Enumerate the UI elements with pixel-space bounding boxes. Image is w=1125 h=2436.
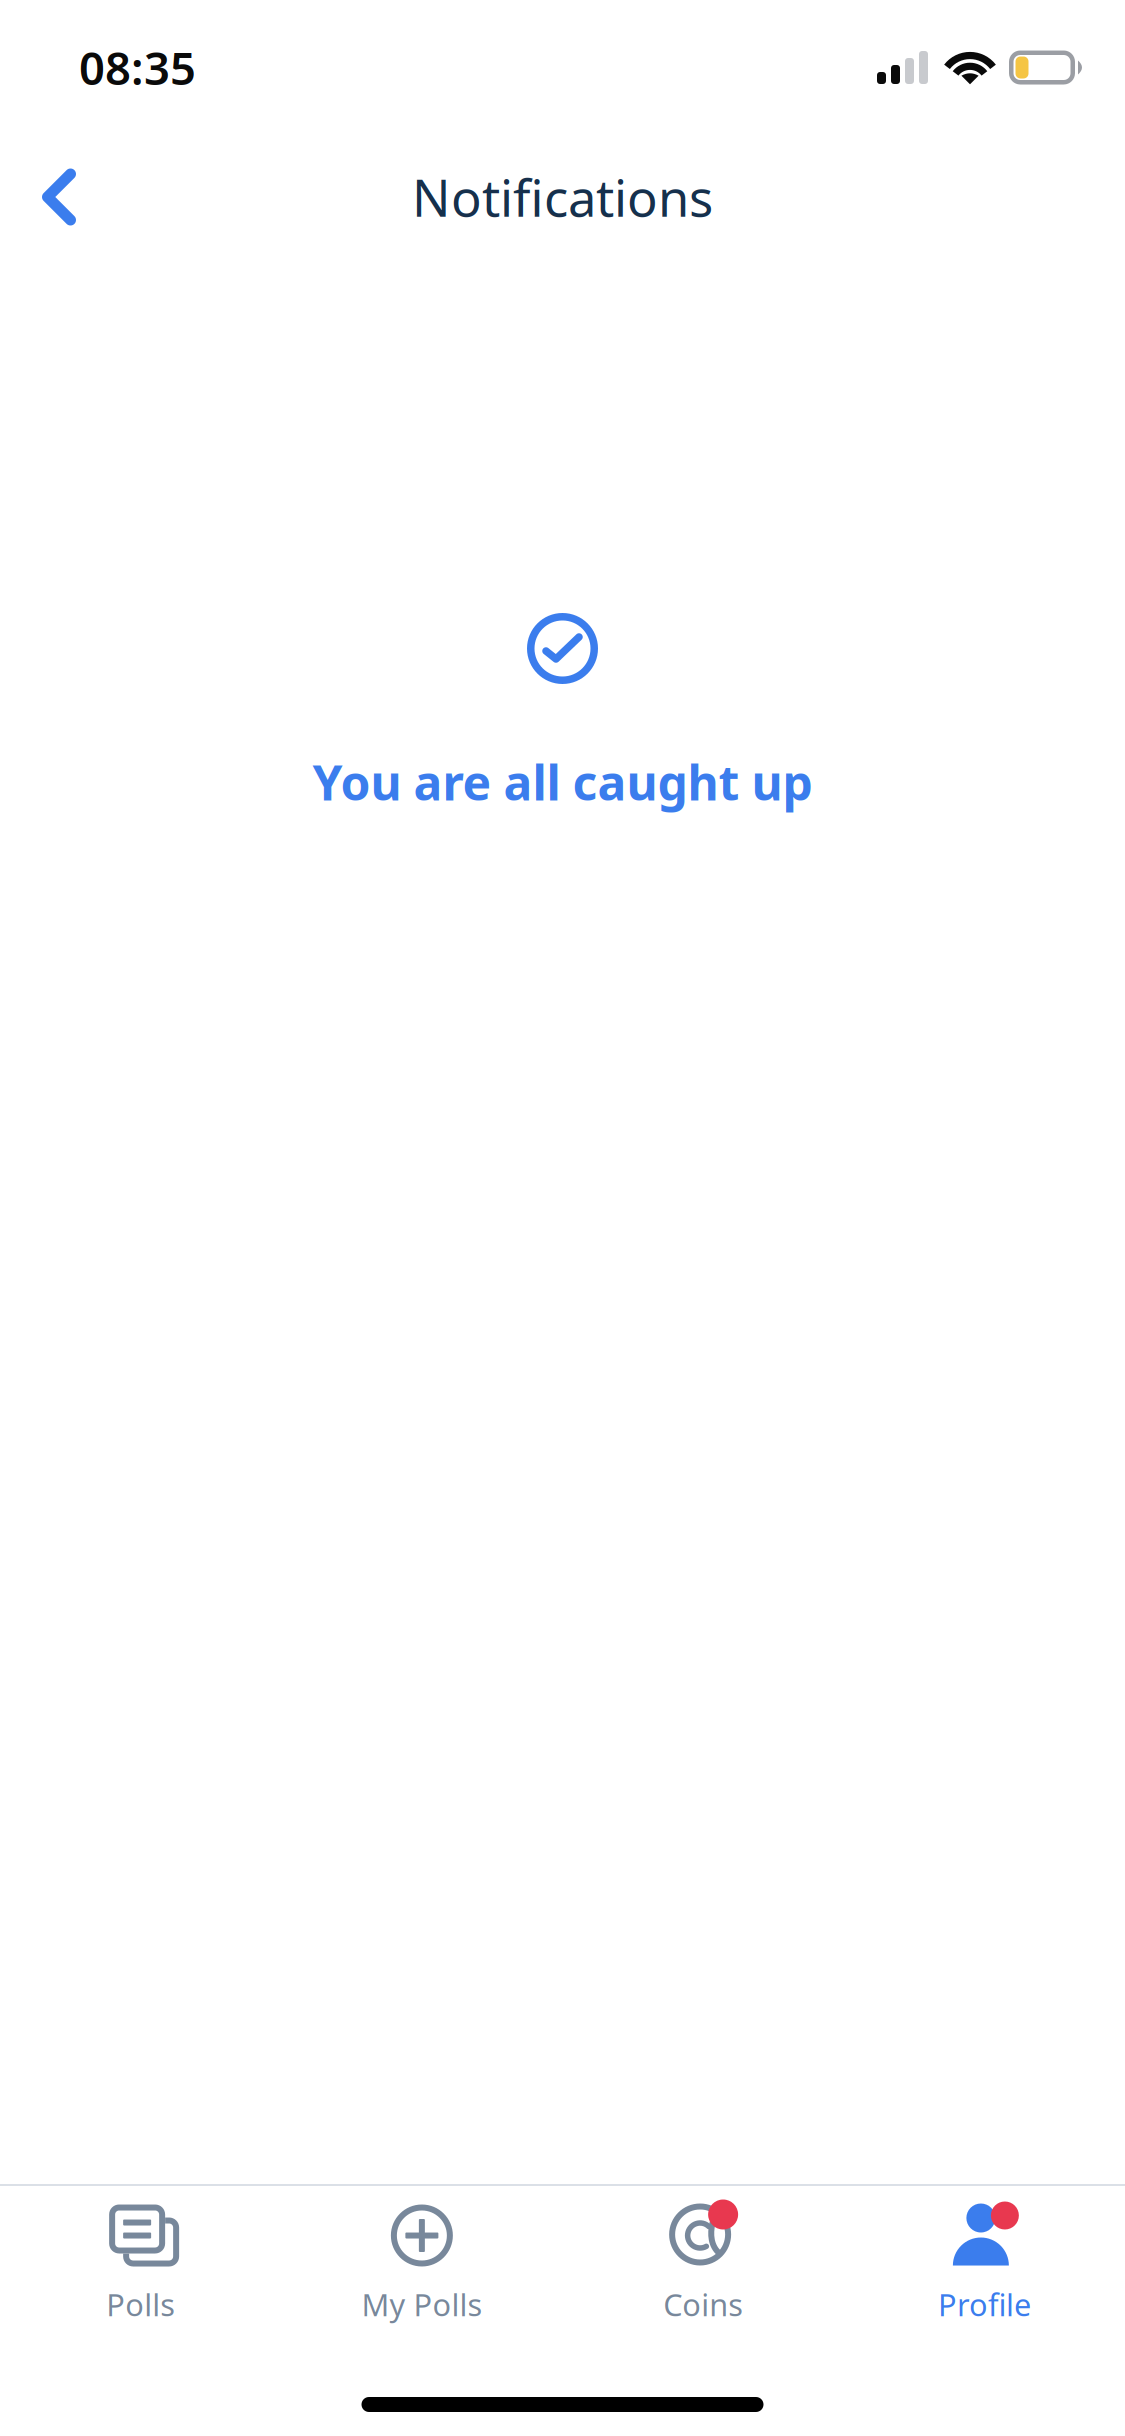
staticText: Coins [663,2284,743,2325]
button[interactable]: Polls [0,2205,281,2325]
staticText: My Polls [361,2284,482,2325]
staticText: 08:35 [79,37,196,98]
button[interactable]: Back [8,142,110,251]
staticText: Polls [106,2284,175,2325]
staticText: You are all caught up [312,750,812,814]
staticText: Notifications [412,163,713,231]
button[interactable]: Coins [562,2205,844,2325]
staticText: Profile [938,2284,1031,2325]
button[interactable]: My Polls [281,2205,562,2325]
button[interactable]: Profile [844,2205,1125,2325]
